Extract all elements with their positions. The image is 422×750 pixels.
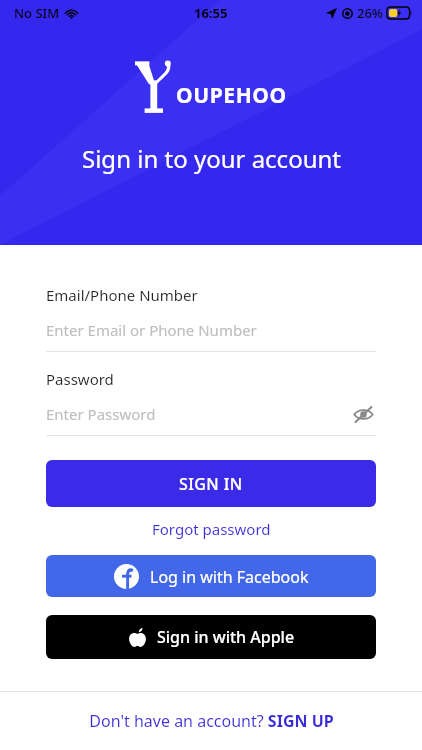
staticText: Sign in to your account xyxy=(82,142,341,175)
button[interactable]: Enter Password xyxy=(46,404,350,424)
staticText: Sign in with Apple xyxy=(157,626,295,648)
button[interactable]: Don't have an account? SIGN UP xyxy=(79,704,344,738)
staticText: Enter Password xyxy=(46,404,156,424)
staticText: Email/Phone Number xyxy=(46,285,198,305)
staticText: 16:55 xyxy=(194,4,228,22)
staticText: Enter Email or Phone Number xyxy=(46,320,257,340)
staticText: Forgot password xyxy=(152,519,271,539)
staticText: SIGN IN xyxy=(179,473,243,495)
staticText: Don't have an account? SIGN UP xyxy=(89,710,334,732)
button[interactable]: SIGN IN xyxy=(46,460,376,507)
button[interactable]: Show password xyxy=(350,403,376,425)
button[interactable]: Enter Email or Phone Number xyxy=(46,319,376,341)
staticText: OUPEHOO xyxy=(176,81,287,110)
staticText: 26% xyxy=(357,4,383,22)
button[interactable]: Sign in with Apple xyxy=(46,615,376,659)
staticText: Log in with Facebook xyxy=(150,566,309,588)
button[interactable]: Log in with Facebook xyxy=(46,555,376,597)
staticText: Password xyxy=(46,369,114,389)
staticText: No SIM xyxy=(14,4,60,22)
button[interactable]: Forgot password xyxy=(144,516,279,542)
